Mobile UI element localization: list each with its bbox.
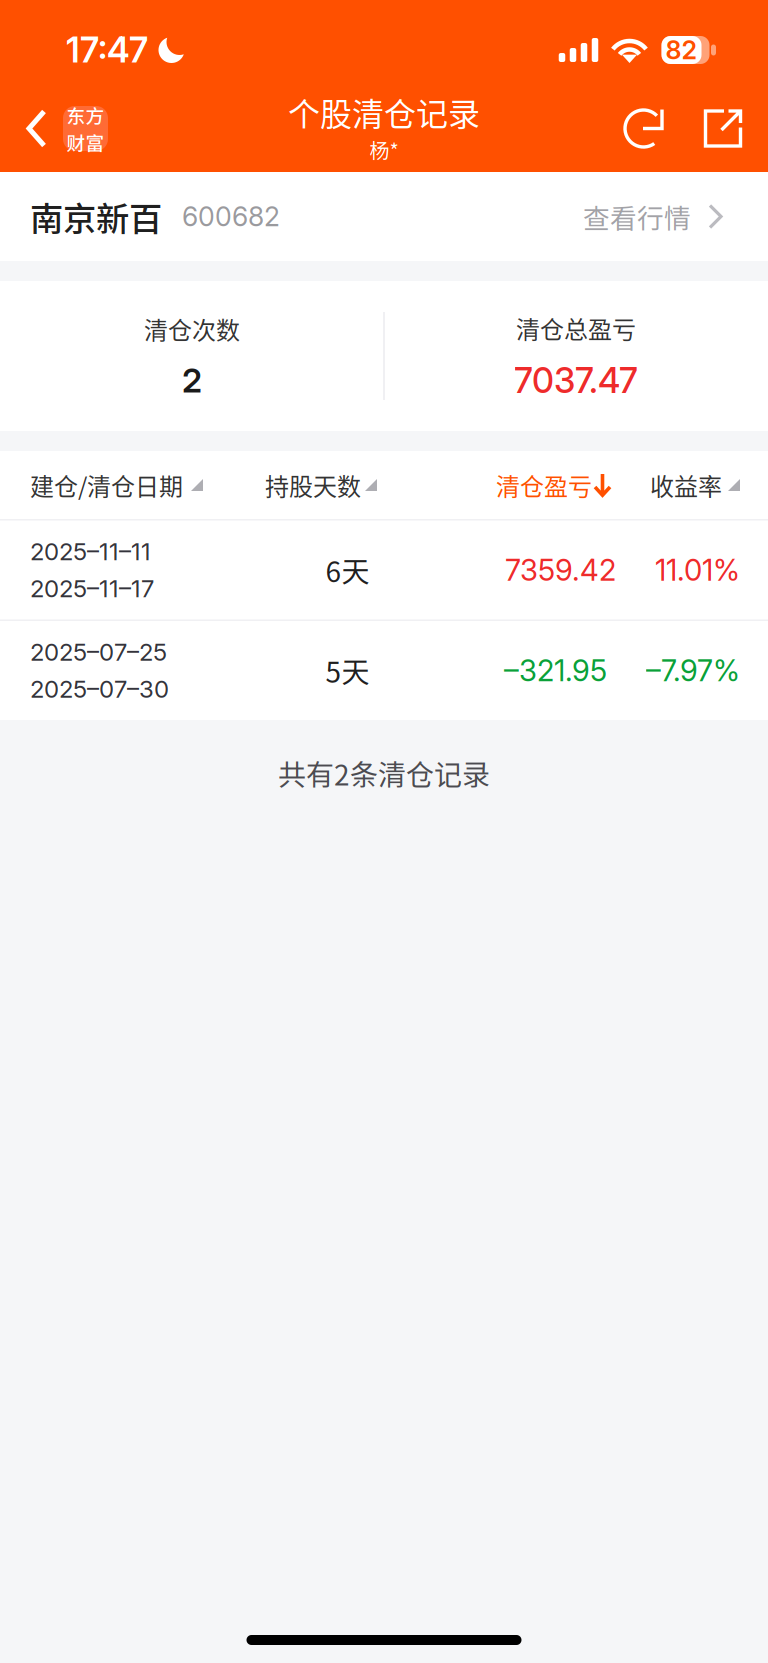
button[interactable]: 刷新	[623, 107, 665, 149]
button[interactable]: 清仓盈亏	[496, 468, 611, 502]
staticText: 清仓次数	[144, 311, 240, 346]
staticText: 2	[182, 360, 202, 400]
staticText: 杨*	[369, 135, 398, 164]
button[interactable]: 返回	[0, 106, 108, 151]
staticText: –7.97%	[646, 653, 740, 688]
staticText: 7359.42	[505, 552, 616, 588]
staticText: –321.95	[504, 653, 607, 688]
button[interactable]: 建仓/清仓日期	[30, 468, 265, 502]
staticText: 2025–11–17	[30, 574, 154, 603]
staticText: 6天	[325, 550, 369, 590]
button[interactable]: 查看行情	[583, 197, 740, 236]
staticText: 持股天数	[265, 468, 361, 502]
staticText: 2025–11–11	[30, 537, 151, 566]
staticText: 7037.47	[514, 359, 638, 401]
staticText: 个股清仓记录	[288, 89, 480, 135]
staticText: 收益率	[650, 468, 722, 502]
button[interactable]: 收益率	[611, 468, 740, 502]
staticText: 2025–07–25	[30, 637, 167, 666]
staticText: 清仓总盈亏	[516, 311, 636, 345]
staticText: 5天	[325, 650, 369, 691]
staticText: 建仓/清仓日期	[30, 468, 183, 502]
staticText: 2025–07–30	[30, 674, 169, 703]
staticText: 600682	[182, 200, 280, 233]
staticText: 财富	[66, 128, 104, 155]
staticText: 82	[665, 35, 697, 65]
staticText: 清仓盈亏	[496, 468, 592, 502]
staticText: 17:47	[66, 29, 148, 71]
staticText: 查看行情	[583, 197, 691, 236]
button[interactable]: 持股天数	[265, 468, 430, 502]
staticText: 共有2条清仓记录	[278, 753, 490, 793]
staticText: 11.01%	[655, 552, 740, 588]
button[interactable]: 分享	[665, 108, 743, 148]
staticText: 南京新百	[30, 192, 162, 241]
staticText: 东方	[66, 101, 104, 128]
